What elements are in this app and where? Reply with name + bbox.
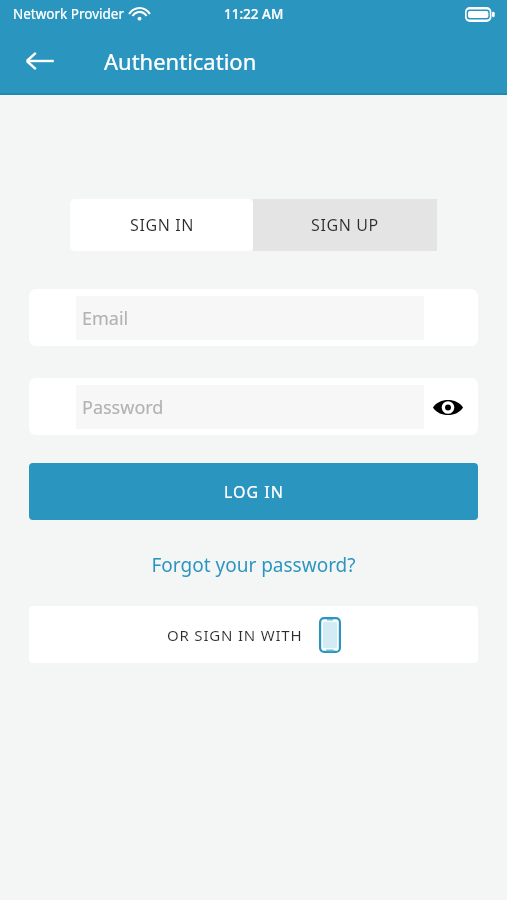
button[interactable]: Show password	[428, 387, 468, 427]
staticText: SIGN UP	[311, 214, 379, 236]
staticText: OR SIGN IN WITH	[167, 625, 303, 645]
button[interactable]: LOG IN	[29, 463, 478, 520]
button[interactable]: OR SIGN IN WITH	[29, 606, 478, 663]
staticText: LOG IN	[224, 481, 284, 503]
staticText: 11:22 AM	[224, 5, 284, 23]
button[interactable]: Back	[16, 37, 64, 85]
staticText: SIGN IN	[130, 214, 194, 236]
button[interactable]: SIGN IN	[70, 199, 253, 251]
staticText: Network Provider	[13, 5, 125, 23]
staticText: Forgot your password?	[151, 552, 356, 578]
button[interactable]: SIGN UP	[253, 199, 437, 251]
button[interactable]: Password	[29, 378, 478, 435]
button[interactable]: Email	[29, 289, 478, 346]
button[interactable]: Forgot your password?	[143, 550, 364, 580]
staticText: Authentication	[104, 46, 257, 76]
staticText: Email	[82, 306, 129, 331]
staticText: Password	[82, 395, 164, 420]
